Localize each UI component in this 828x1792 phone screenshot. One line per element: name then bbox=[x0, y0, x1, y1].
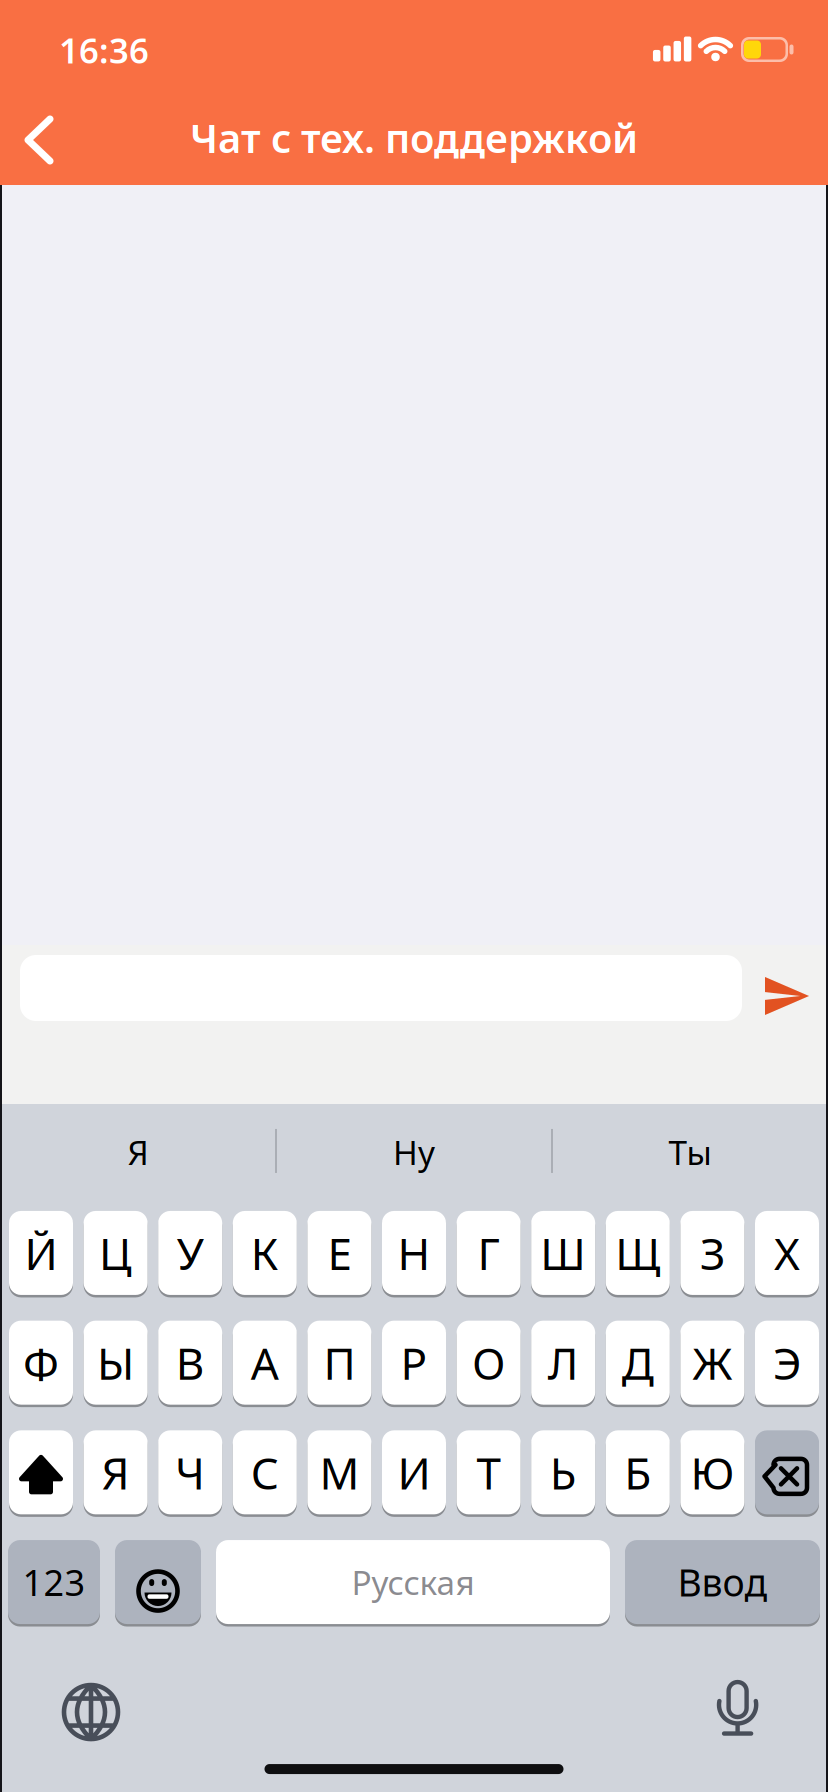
staticText: Т bbox=[477, 1443, 501, 1501]
staticText: Ж bbox=[692, 1333, 732, 1392]
staticText: Я bbox=[127, 1130, 148, 1174]
button[interactable] bbox=[765, 977, 809, 1015]
button[interactable]: Б bbox=[606, 1430, 670, 1514]
staticText: И bbox=[397, 1443, 430, 1501]
button[interactable]: Ш bbox=[531, 1211, 595, 1295]
button[interactable]: Д bbox=[606, 1321, 670, 1405]
staticText: П bbox=[323, 1333, 355, 1392]
staticText: Я bbox=[102, 1443, 130, 1501]
button[interactable]: Ю bbox=[680, 1430, 744, 1514]
button[interactable]: Я bbox=[0, 1104, 276, 1200]
button[interactable]: Щ bbox=[606, 1211, 670, 1295]
button[interactable] bbox=[60, 1681, 122, 1743]
staticText: 123 bbox=[22, 1558, 85, 1606]
staticText: В bbox=[176, 1333, 205, 1392]
staticText: С bbox=[251, 1443, 279, 1501]
staticText: Д bbox=[622, 1333, 654, 1392]
staticText: Ч bbox=[175, 1443, 205, 1501]
staticText: Ш bbox=[540, 1224, 586, 1282]
staticText: У bbox=[177, 1224, 204, 1282]
staticText: К bbox=[251, 1224, 279, 1282]
staticText: Русская bbox=[351, 1560, 474, 1604]
staticText: Ввод bbox=[677, 1557, 767, 1607]
button[interactable]: О bbox=[457, 1321, 521, 1405]
staticText: 16:36 bbox=[59, 27, 149, 73]
staticText: Чат с тех. поддержкой bbox=[190, 111, 638, 164]
button[interactable]: З bbox=[680, 1211, 744, 1295]
staticText: О bbox=[472, 1333, 505, 1392]
button[interactable]: Ты bbox=[552, 1104, 828, 1200]
button[interactable]: Я bbox=[84, 1430, 148, 1514]
staticText: Ну bbox=[393, 1130, 435, 1174]
button[interactable]: Ц bbox=[84, 1211, 148, 1295]
staticText: Х bbox=[774, 1224, 800, 1282]
staticText: А bbox=[251, 1333, 279, 1392]
staticText: Ю bbox=[690, 1443, 734, 1501]
button[interactable]: Т bbox=[457, 1430, 521, 1514]
button[interactable]: Е bbox=[307, 1211, 371, 1295]
button[interactable]: Л bbox=[531, 1321, 595, 1405]
staticText: Н bbox=[397, 1224, 430, 1282]
staticText: Ы bbox=[97, 1333, 134, 1392]
staticText: Ты bbox=[668, 1130, 711, 1174]
button[interactable]: В bbox=[158, 1321, 222, 1405]
staticText: З bbox=[700, 1224, 725, 1282]
staticText: Б bbox=[624, 1443, 651, 1501]
staticText: Й bbox=[24, 1224, 57, 1282]
staticText: Г bbox=[478, 1224, 500, 1282]
button[interactable]: П bbox=[307, 1321, 371, 1405]
button[interactable]: Ж bbox=[680, 1321, 744, 1405]
button[interactable]: Ну bbox=[276, 1104, 552, 1200]
button[interactable]: Н bbox=[382, 1211, 446, 1295]
button[interactable]: А bbox=[233, 1321, 297, 1405]
button[interactable]: Х bbox=[755, 1211, 819, 1295]
button[interactable]: Русская bbox=[216, 1540, 610, 1624]
button[interactable]: Ввод bbox=[625, 1540, 820, 1624]
button[interactable]: Ч bbox=[158, 1430, 222, 1514]
button[interactable] bbox=[9, 1430, 73, 1514]
button[interactable] bbox=[714, 1680, 762, 1736]
button[interactable]: М bbox=[307, 1430, 371, 1514]
staticText: Е bbox=[327, 1224, 351, 1282]
button[interactable]: У bbox=[158, 1211, 222, 1295]
button[interactable]: Р bbox=[382, 1321, 446, 1405]
button[interactable]: Ь bbox=[531, 1430, 595, 1514]
button[interactable]: И bbox=[382, 1430, 446, 1514]
button[interactable]: Ы bbox=[84, 1321, 148, 1405]
button[interactable]: Й bbox=[9, 1211, 73, 1295]
staticText: Л bbox=[548, 1333, 579, 1392]
button[interactable] bbox=[14, 117, 64, 163]
staticText: Р bbox=[400, 1333, 427, 1392]
button[interactable]: Ф bbox=[9, 1321, 73, 1405]
button[interactable]: С bbox=[233, 1430, 297, 1514]
button[interactable]: Г bbox=[457, 1211, 521, 1295]
button[interactable] bbox=[755, 1430, 819, 1514]
button[interactable] bbox=[115, 1540, 201, 1624]
staticText: Э bbox=[773, 1333, 801, 1392]
staticText: М bbox=[319, 1443, 359, 1501]
staticText: Ь bbox=[550, 1443, 577, 1501]
staticText: Ц bbox=[99, 1224, 132, 1282]
staticText: Щ bbox=[615, 1224, 660, 1282]
button[interactable]: К bbox=[233, 1211, 297, 1295]
button[interactable]: Э bbox=[755, 1321, 819, 1405]
button[interactable]: 123 bbox=[8, 1540, 100, 1624]
staticText: Ф bbox=[23, 1333, 59, 1392]
